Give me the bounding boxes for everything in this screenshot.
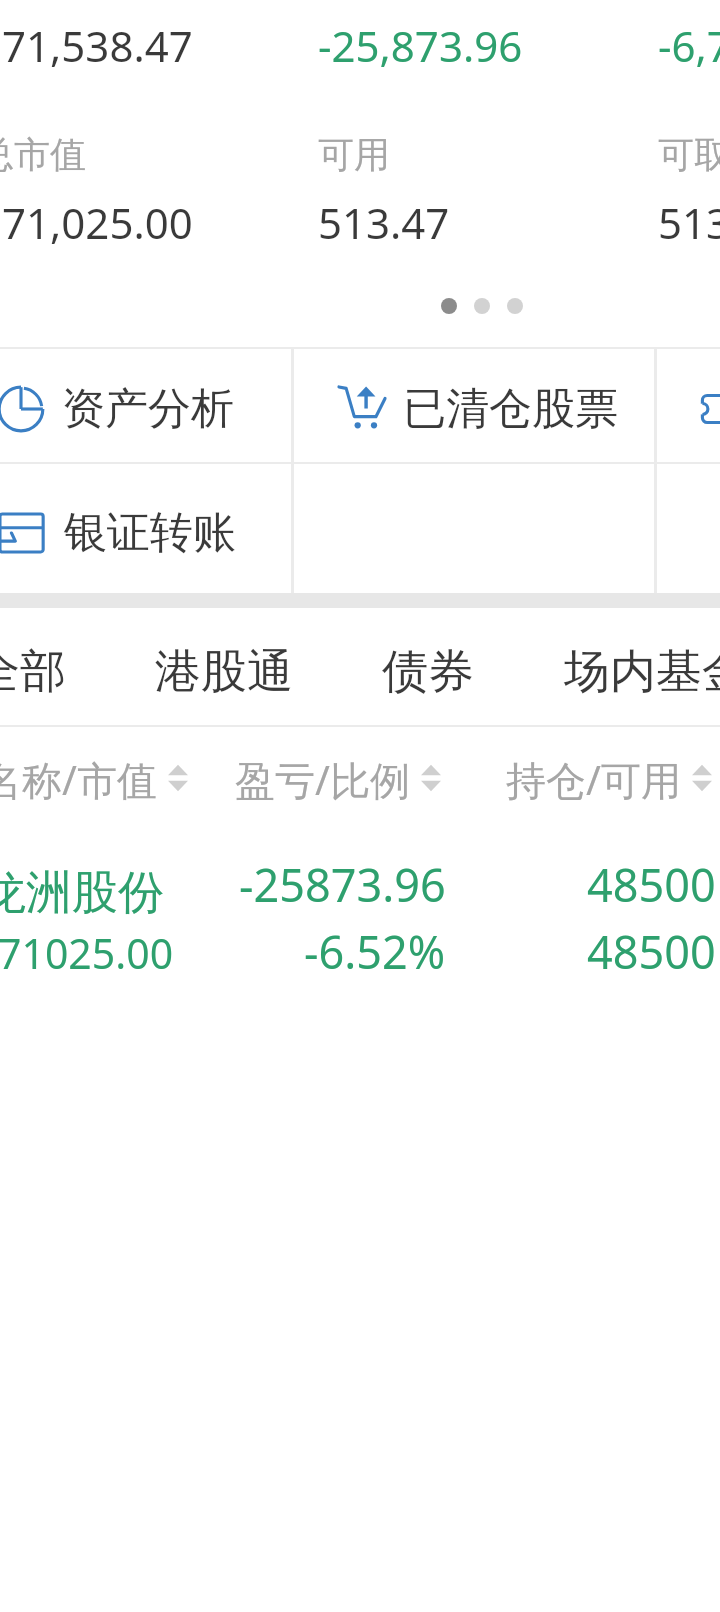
staticText: 港股通: [155, 643, 293, 701]
button[interactable]: 名称/市值: [0, 752, 188, 804]
button[interactable]: 已清仓股票: [297, 349, 658, 468]
button[interactable]: 资产分析: [0, 349, 297, 468]
staticText: 48500: [587, 921, 716, 982]
staticText: 名称/市值: [0, 752, 157, 804]
staticText: 银证转账: [64, 506, 236, 560]
button[interactable]: 场内基金: [555, 615, 720, 728]
staticText: 可用: [318, 132, 390, 177]
staticText: 场内基金: [564, 643, 720, 701]
staticText: 债券: [382, 643, 474, 701]
button[interactable]: 港股通: [123, 615, 325, 728]
staticText: 71025.00: [0, 925, 174, 981]
staticText: 513.47: [658, 194, 720, 251]
button[interactable]: 持仓/可用: [452, 752, 712, 804]
button[interactable]: 盈亏/比例: [181, 752, 441, 804]
staticText: 资产分析: [62, 382, 234, 436]
button[interactable]: 债券: [327, 615, 529, 728]
button[interactable]: 银证转账: [0, 464, 299, 601]
staticText: 已清仓股票: [403, 382, 618, 436]
staticText: 全部: [0, 643, 66, 701]
staticText: 可取: [658, 132, 720, 177]
staticText: 371,025.00: [0, 194, 193, 251]
button[interactable]: 优惠券: [700, 385, 720, 433]
staticText: 持仓/可用: [506, 752, 681, 804]
staticText: 513.47: [318, 194, 450, 251]
staticText: 总市值: [0, 132, 86, 177]
staticText: -6.52%: [304, 921, 446, 982]
staticText: -25,873.96: [318, 17, 523, 74]
staticText: 龙洲股份: [0, 864, 164, 922]
staticText: -25873.96: [239, 854, 446, 915]
button[interactable]: 龙洲股份: [0, 845, 720, 1005]
staticText: 48500: [587, 854, 716, 915]
staticText: 盈亏/比例: [235, 752, 410, 804]
staticText: 371,538.47: [0, 17, 193, 74]
staticText: -6,752.10: [658, 17, 720, 74]
button[interactable]: 全部: [0, 615, 121, 728]
